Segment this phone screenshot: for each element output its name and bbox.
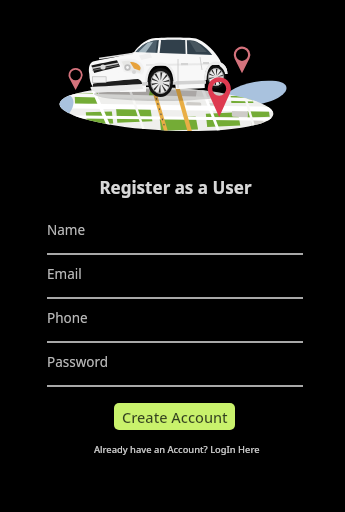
- button[interactable]: Phone: [47, 309, 303, 341]
- button[interactable]: Password: [47, 353, 303, 385]
- button[interactable]: Name: [47, 221, 303, 253]
- button[interactable]: Create Account: [114, 403, 235, 430]
- staticText: Register as a User: [99, 176, 252, 199]
- staticText: Phone: [47, 309, 88, 327]
- staticText: Password: [47, 353, 109, 371]
- staticText: Name: [47, 221, 86, 239]
- button[interactable]: Email: [47, 265, 303, 297]
- staticText: Email: [47, 265, 82, 283]
- button[interactable]: Already have an Account? LogIn Here: [88, 440, 266, 459]
- staticText: Already have an Account? LogIn Here: [94, 443, 260, 456]
- staticText: Create Account: [122, 407, 228, 427]
